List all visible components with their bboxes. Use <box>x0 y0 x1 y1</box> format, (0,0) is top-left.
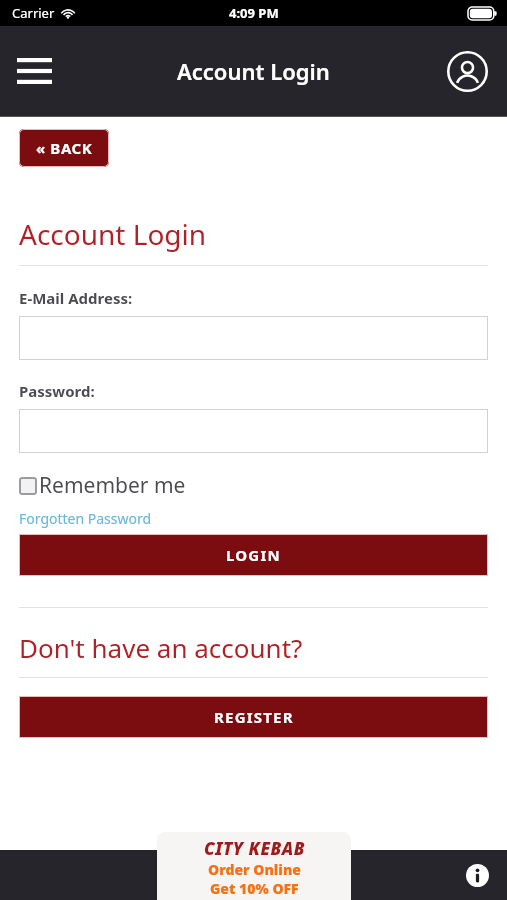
button[interactable]: Menu <box>12 49 56 93</box>
button[interactable]: Ad info <box>466 864 489 887</box>
staticText: E-Mail Address: <box>19 288 133 308</box>
staticText: 4:09 PM <box>229 4 279 22</box>
staticText: Remember me <box>39 471 186 500</box>
staticText: Account Login <box>177 56 330 86</box>
button[interactable]: Remember me <box>19 471 186 500</box>
button[interactable]: LOGIN <box>19 534 488 576</box>
staticText: « BACK <box>36 138 93 158</box>
staticText: LOGIN <box>226 545 281 565</box>
button[interactable]: Forgotten Password <box>19 509 152 528</box>
staticText: Carrier <box>12 4 55 22</box>
button[interactable]: Account <box>445 49 489 93</box>
staticText: Forgotten Password <box>19 509 152 528</box>
staticText: Account Login <box>19 215 207 253</box>
button[interactable]: « BACK <box>19 129 109 167</box>
staticText: REGISTER <box>214 707 294 727</box>
staticText: Get 10% OFF <box>210 879 299 898</box>
button[interactable] <box>19 409 488 453</box>
staticText: CITY KEBAB <box>204 837 305 860</box>
staticText: Don't have an account? <box>19 630 303 665</box>
staticText: Order Online <box>208 860 301 879</box>
button[interactable]: REGISTER <box>19 696 488 738</box>
button[interactable]: Advertisement <box>157 832 351 900</box>
button[interactable] <box>19 316 488 360</box>
staticText: Password: <box>19 381 95 401</box>
